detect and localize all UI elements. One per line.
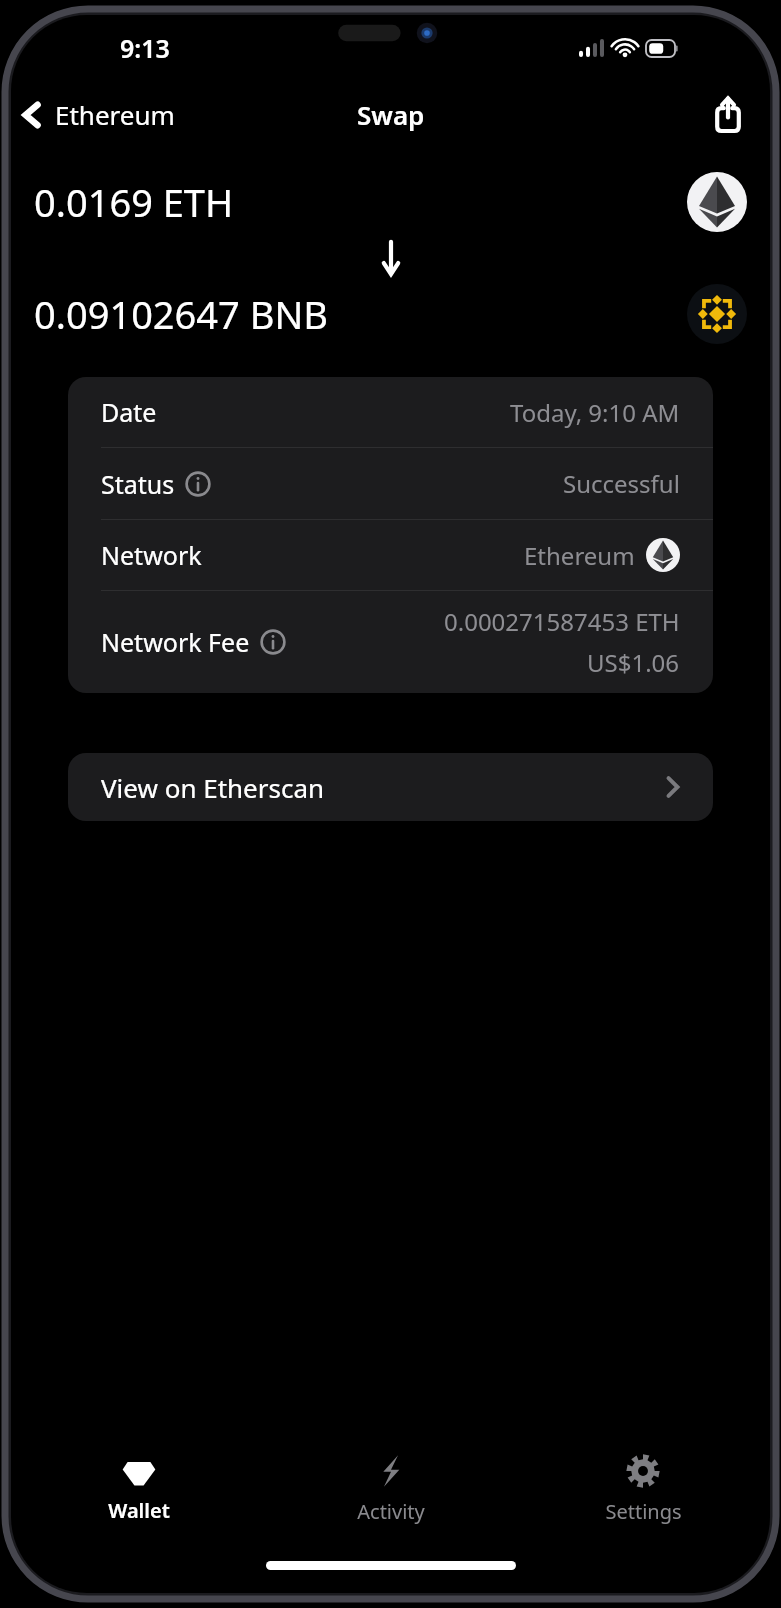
staticText: Today, 9:10 AM xyxy=(510,396,680,429)
staticText: Settings xyxy=(605,1498,682,1525)
staticText: Swap xyxy=(357,97,425,132)
staticText: Ethereum xyxy=(524,539,635,572)
button[interactable]: Network Fee xyxy=(68,591,713,693)
staticText: Ethereum xyxy=(55,97,175,132)
button[interactable]: Network xyxy=(68,520,713,590)
staticText: 0.0169 ETH xyxy=(34,176,687,228)
button[interactable]: Wallet xyxy=(12,1443,265,1535)
button[interactable]: Share xyxy=(705,89,751,139)
button[interactable]: Settings xyxy=(517,1443,769,1535)
staticText: 0.09102647 BNB xyxy=(34,288,687,340)
staticText: Wallet xyxy=(108,1497,170,1524)
staticText: Date xyxy=(101,395,157,429)
staticText: Network xyxy=(101,538,202,572)
staticText: US$1.06 xyxy=(587,646,680,679)
button[interactable]: Ethereum xyxy=(12,91,185,138)
button[interactable]: Activity xyxy=(265,1443,517,1535)
staticText: Activity xyxy=(357,1498,425,1525)
button[interactable]: Status xyxy=(68,448,713,519)
staticText: Successful xyxy=(563,467,680,500)
button[interactable]: View on Etherscan xyxy=(68,753,713,821)
staticText: 9:13 xyxy=(120,31,170,65)
button[interactable]: Date xyxy=(68,377,713,447)
staticText: View on Etherscan xyxy=(101,770,666,805)
staticText: Status xyxy=(101,467,175,501)
staticText: Network Fee xyxy=(101,625,250,659)
staticText: 0.000271587453 ETH xyxy=(444,605,680,638)
